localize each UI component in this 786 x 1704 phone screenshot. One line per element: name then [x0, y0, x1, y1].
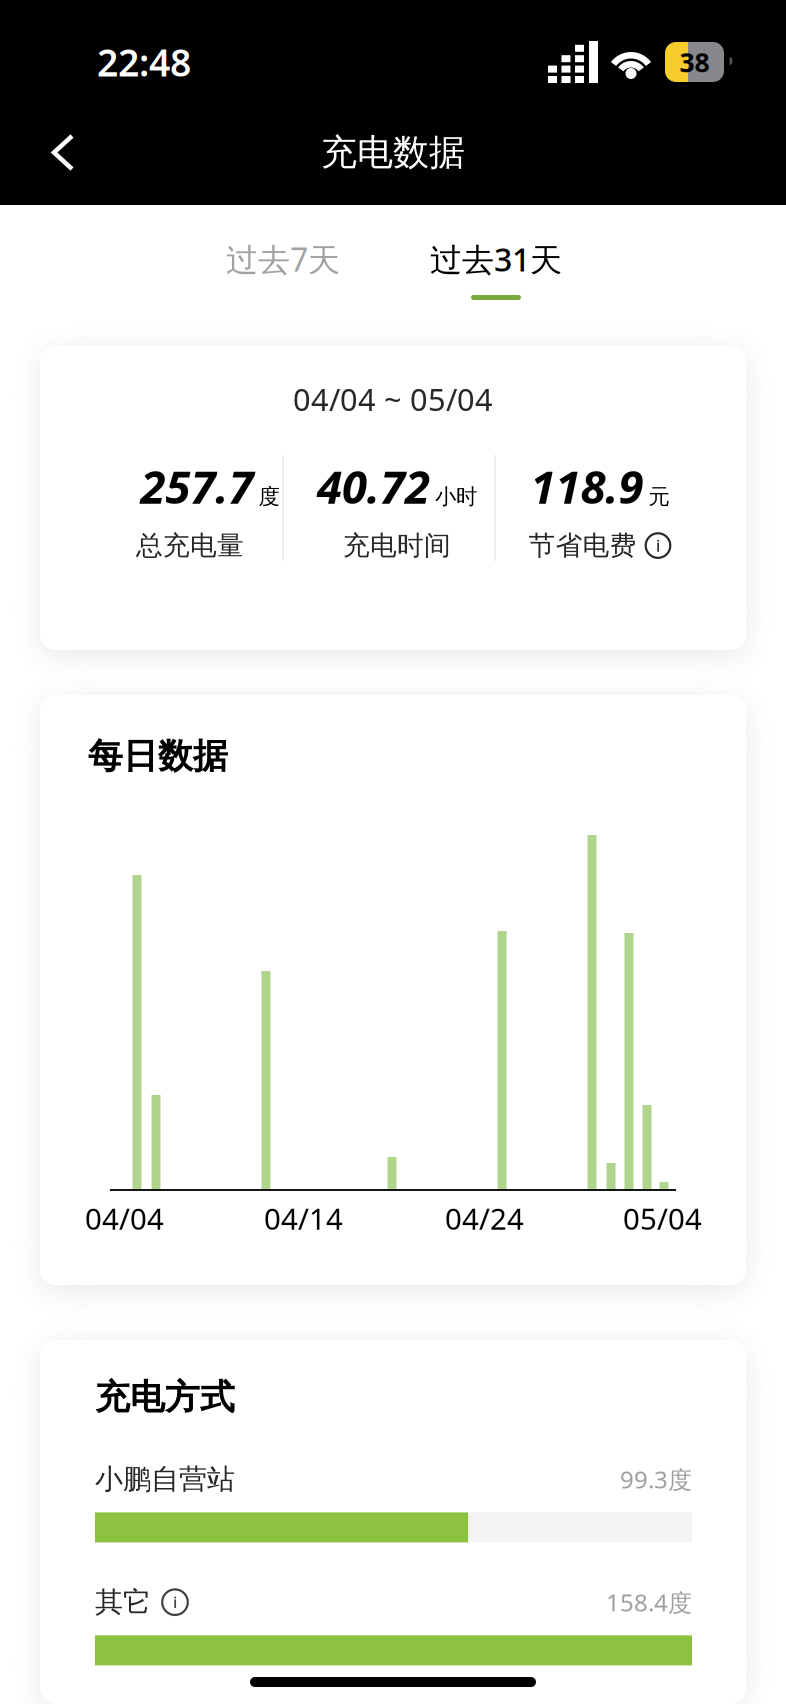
- button[interactable]: i: [161, 1588, 189, 1616]
- staticText: 过去7天: [226, 238, 340, 280]
- staticText: 04/04 ~ 05/04: [293, 379, 493, 419]
- staticText: i: [656, 535, 660, 556]
- staticText: 总充电量: [136, 529, 244, 562]
- staticText: 度: [258, 483, 279, 510]
- button[interactable]: i: [644, 532, 671, 559]
- staticText: 过去31天: [430, 238, 562, 280]
- staticText: 158.4度: [606, 1586, 692, 1618]
- staticText: 40.72: [317, 456, 430, 516]
- staticText: i: [173, 1592, 177, 1613]
- button[interactable]: [0, 100, 105, 205]
- button[interactable]: 过去31天: [430, 235, 562, 300]
- staticText: 小鹏自营站: [95, 1462, 235, 1496]
- staticText: 257.7: [140, 456, 253, 516]
- staticText: 小时: [435, 483, 477, 510]
- staticText: 99.3度: [620, 1463, 692, 1495]
- staticText: 118.9: [530, 456, 643, 516]
- staticText: 充电方式: [95, 1376, 235, 1419]
- staticText: 充电数据: [321, 130, 465, 175]
- staticText: 其它: [95, 1585, 151, 1619]
- staticText: 04/24: [445, 1199, 524, 1238]
- staticText: 04/14: [264, 1199, 343, 1238]
- staticText: 元: [648, 483, 669, 510]
- staticText: 22:48: [97, 37, 191, 87]
- staticText: 充电时间: [343, 529, 451, 562]
- button[interactable]: 过去7天: [218, 235, 348, 283]
- staticText: 38: [679, 44, 709, 80]
- staticText: 每日数据: [88, 735, 228, 778]
- staticText: 04/04: [85, 1199, 164, 1238]
- staticText: 05/04: [623, 1199, 702, 1238]
- staticText: 节省电费: [528, 529, 636, 562]
